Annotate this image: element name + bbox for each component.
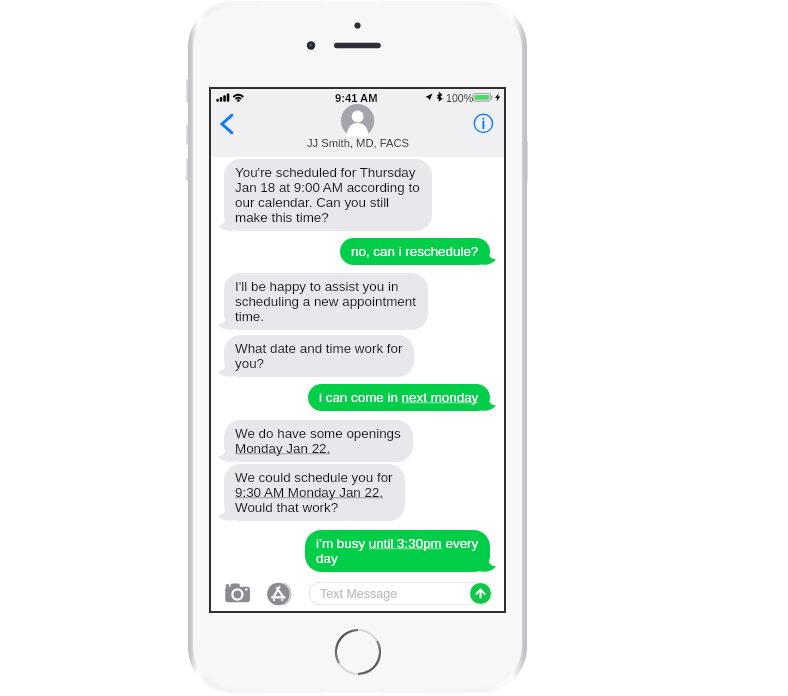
button[interactable]: i can come in next monday [308,384,490,411]
staticText: no, can i reschedule? [351,244,479,259]
button[interactable]: You're scheduled for Thursday Jan 18 at … [224,159,432,231]
button[interactable]: Camera [223,582,252,606]
button[interactable]: no, can i reschedule? [340,238,490,265]
button[interactable]: I'll be happy to assist you in schedulin… [224,273,428,330]
staticText: I'll be happy to assist you in schedulin… [235,279,417,324]
button[interactable]: What date and time work for you? [224,335,414,377]
staticText: Text Message [320,587,398,601]
staticText: 100% [446,92,474,104]
button[interactable]: i’m busy until 3:30pm every day [305,530,490,572]
button[interactable]: Send [470,583,491,604]
button[interactable]: We could schedule you for 9:30 AM Monday… [224,464,405,521]
staticText: JJ Smith, MD, FACS [307,137,409,150]
staticText: i’m busy until 3:30pm every day [316,536,479,566]
staticText: You're scheduled for Thursday Jan 18 at … [235,165,421,225]
button[interactable]: Back [214,113,240,145]
staticText: We could schedule you for 9:30 AM Monday… [235,470,394,515]
button[interactable]: Apps [265,582,294,606]
staticText: We do have some openings Monday Jan 22. [235,426,402,456]
button[interactable]: JJ Smith, MD, FACS [298,109,418,157]
button[interactable]: We do have some openings Monday Jan 22. [224,420,413,462]
button[interactable]: Text Message [309,582,492,605]
button[interactable]: Details [470,110,497,137]
staticText: 9:41 AM [335,92,378,105]
staticText: What date and time work for you? [235,341,403,371]
staticText: i can come in next monday [319,390,479,405]
